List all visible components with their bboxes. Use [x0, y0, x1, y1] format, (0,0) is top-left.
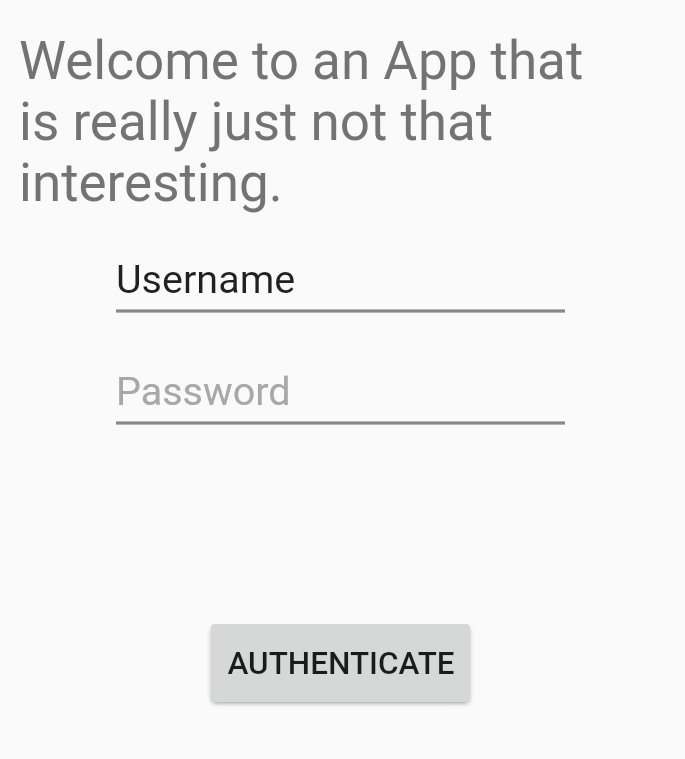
staticText: AUTHENTICATE	[227, 645, 455, 682]
staticText: Welcome to an App that is really just no…	[19, 30, 619, 214]
staticText: Username	[116, 256, 296, 302]
button[interactable]: Password	[116, 368, 565, 424]
button[interactable]: AUTHENTICATE	[211, 624, 470, 702]
button[interactable]: Username	[116, 256, 565, 312]
staticText: Password	[116, 368, 291, 414]
